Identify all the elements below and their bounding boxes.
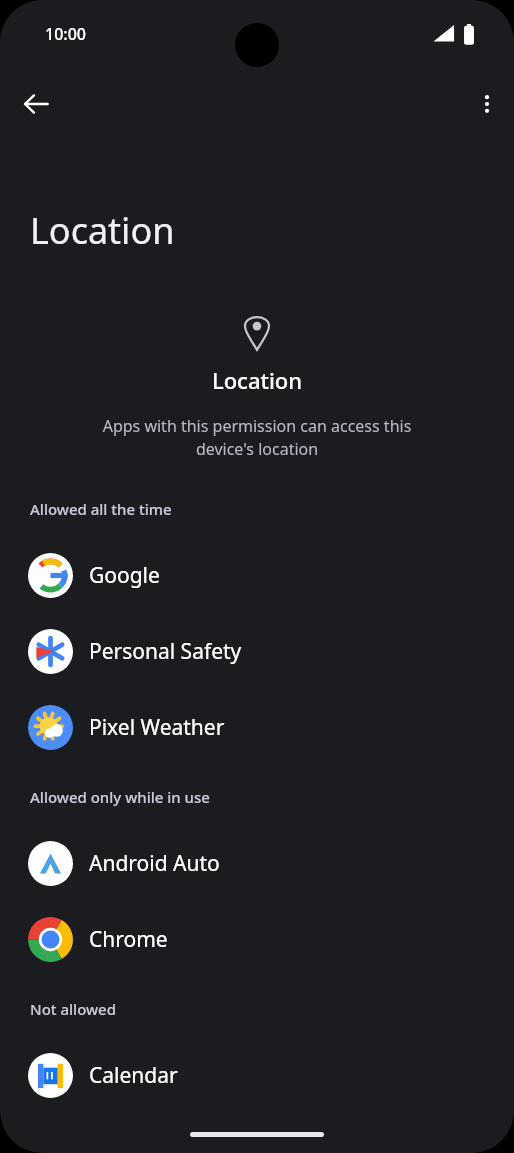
button[interactable]: Back xyxy=(10,78,62,130)
button[interactable]: More options xyxy=(461,78,513,130)
staticText: Android Auto xyxy=(89,849,220,878)
button[interactable]: Pixel Weather xyxy=(0,689,514,765)
button[interactable]: Android Auto xyxy=(0,825,514,901)
button[interactable]: Google xyxy=(0,537,514,613)
button[interactable]: Chrome xyxy=(0,901,514,977)
staticText: Pixel Weather xyxy=(89,713,225,742)
staticText: Allowed all the time xyxy=(30,499,172,519)
staticText: Location xyxy=(30,206,175,255)
staticText: Personal Safety xyxy=(89,637,242,666)
staticText: 10:00 xyxy=(45,23,86,45)
staticText: Location xyxy=(0,365,514,395)
staticText: Apps with this permission can access thi… xyxy=(40,415,474,460)
staticText: Google xyxy=(89,561,160,590)
staticText: Allowed only while in use xyxy=(30,787,210,807)
button[interactable]: Personal Safety xyxy=(0,613,514,689)
button[interactable]: Calendar xyxy=(0,1037,514,1113)
staticText: Chrome xyxy=(89,925,168,954)
staticText: Not allowed xyxy=(30,999,117,1019)
staticText: Calendar xyxy=(89,1061,178,1090)
